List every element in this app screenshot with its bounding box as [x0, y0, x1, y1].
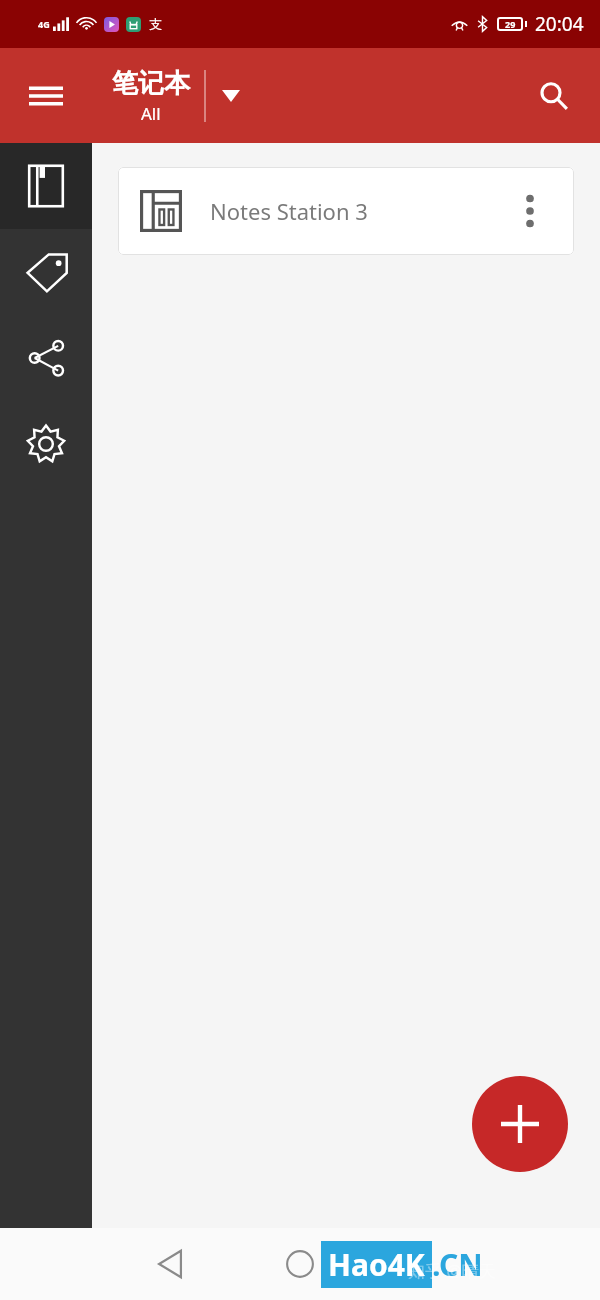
- button[interactable]: Notes Station 3: [118, 167, 574, 255]
- staticText: All: [141, 102, 161, 125]
- button[interactable]: Settings: [0, 401, 92, 487]
- staticText: Notes Station 3: [210, 196, 368, 226]
- button[interactable]: Search: [524, 66, 584, 126]
- button[interactable]: Shared: [0, 315, 92, 401]
- staticText: 笔记本: [112, 67, 190, 100]
- button[interactable]: Create new note: [472, 1076, 568, 1172]
- button[interactable]: 笔记本: [112, 67, 240, 125]
- button[interactable]: Home: [270, 1234, 330, 1294]
- button[interactable]: Tags: [0, 229, 92, 315]
- staticText: 知乎 @晴天: [408, 1259, 496, 1282]
- staticText: 20:04: [535, 11, 584, 37]
- staticText: 29: [505, 18, 516, 30]
- staticText: 4G: [38, 18, 50, 30]
- staticText: 支: [149, 16, 162, 32]
- button[interactable]: More options: [508, 189, 552, 233]
- button[interactable]: Open navigation drawer: [14, 64, 78, 128]
- button[interactable]: Notebooks: [0, 143, 92, 229]
- staticText: Hao4K: [328, 1244, 425, 1285]
- staticText: .CN: [432, 1244, 483, 1285]
- button[interactable]: Back: [140, 1234, 200, 1294]
